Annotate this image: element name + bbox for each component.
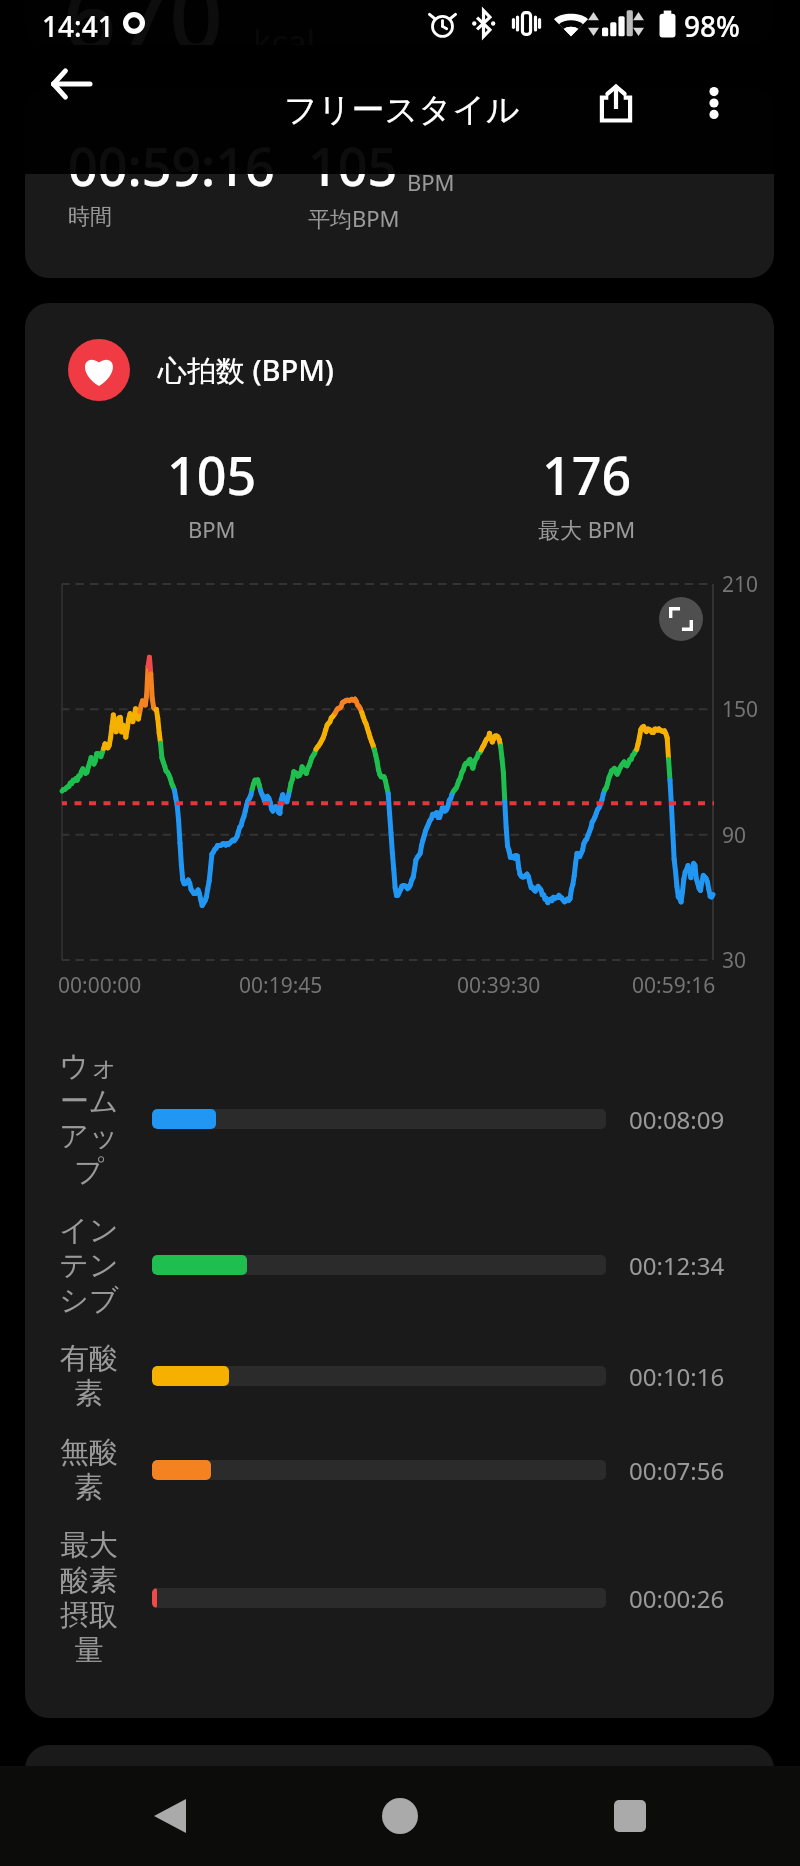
button[interactable]: 670 [25, 0, 774, 45]
staticText: 210 [722, 570, 759, 599]
staticText: 14:41 [42, 7, 114, 45]
staticText: 00:00:26 [629, 1582, 725, 1615]
staticText: 98% [684, 7, 740, 45]
staticText: 00:08:09 [629, 1103, 725, 1136]
staticText: 176 [542, 439, 632, 510]
button[interactable]: Expand chart [659, 597, 703, 641]
button[interactable]: Back [130, 1776, 210, 1856]
staticText: BPM [407, 167, 455, 197]
button[interactable]: Back [35, 48, 107, 120]
staticText: 時間 [68, 203, 112, 231]
staticText: 90 [722, 821, 747, 850]
staticText: BPM [188, 514, 236, 544]
staticText: 平均BPM [308, 203, 400, 233]
button[interactable]: Share [582, 69, 650, 137]
staticText: 00:39:30 [457, 971, 541, 1000]
staticText: 無酸素 [59, 1434, 119, 1506]
staticText: 670 [63, 0, 223, 45]
button[interactable]: Recents [590, 1776, 670, 1856]
button[interactable]: Home [360, 1776, 440, 1856]
staticText: 00:10:16 [629, 1360, 725, 1393]
staticText: 30 [722, 946, 747, 975]
button[interactable] [25, 1745, 774, 1865]
button[interactable]: 00:59:16 [25, 88, 774, 278]
staticText: 150 [722, 695, 759, 724]
staticText: 00:07:56 [629, 1454, 725, 1487]
staticText: 00:19:45 [239, 971, 323, 1000]
staticText: 00:59:16 [632, 971, 716, 1000]
staticText: 心拍数 (BPM) [158, 350, 334, 390]
staticText: ウォームアップ [59, 1048, 119, 1190]
staticText: 最大 BPM [538, 514, 636, 544]
staticText: 105 [167, 439, 257, 510]
staticText: 有酸素 [59, 1340, 119, 1412]
staticText: フリースタイル [284, 89, 520, 131]
staticText: 00:59:16 [68, 130, 275, 201]
staticText: 105 [308, 130, 398, 201]
staticText: 00:00:00 [58, 971, 142, 1000]
button[interactable]: More options [680, 69, 748, 137]
staticText: 00:12:34 [629, 1249, 725, 1282]
staticText: 最大酸素摂取量 [59, 1527, 119, 1669]
staticText: インテンシブ [59, 1212, 119, 1319]
